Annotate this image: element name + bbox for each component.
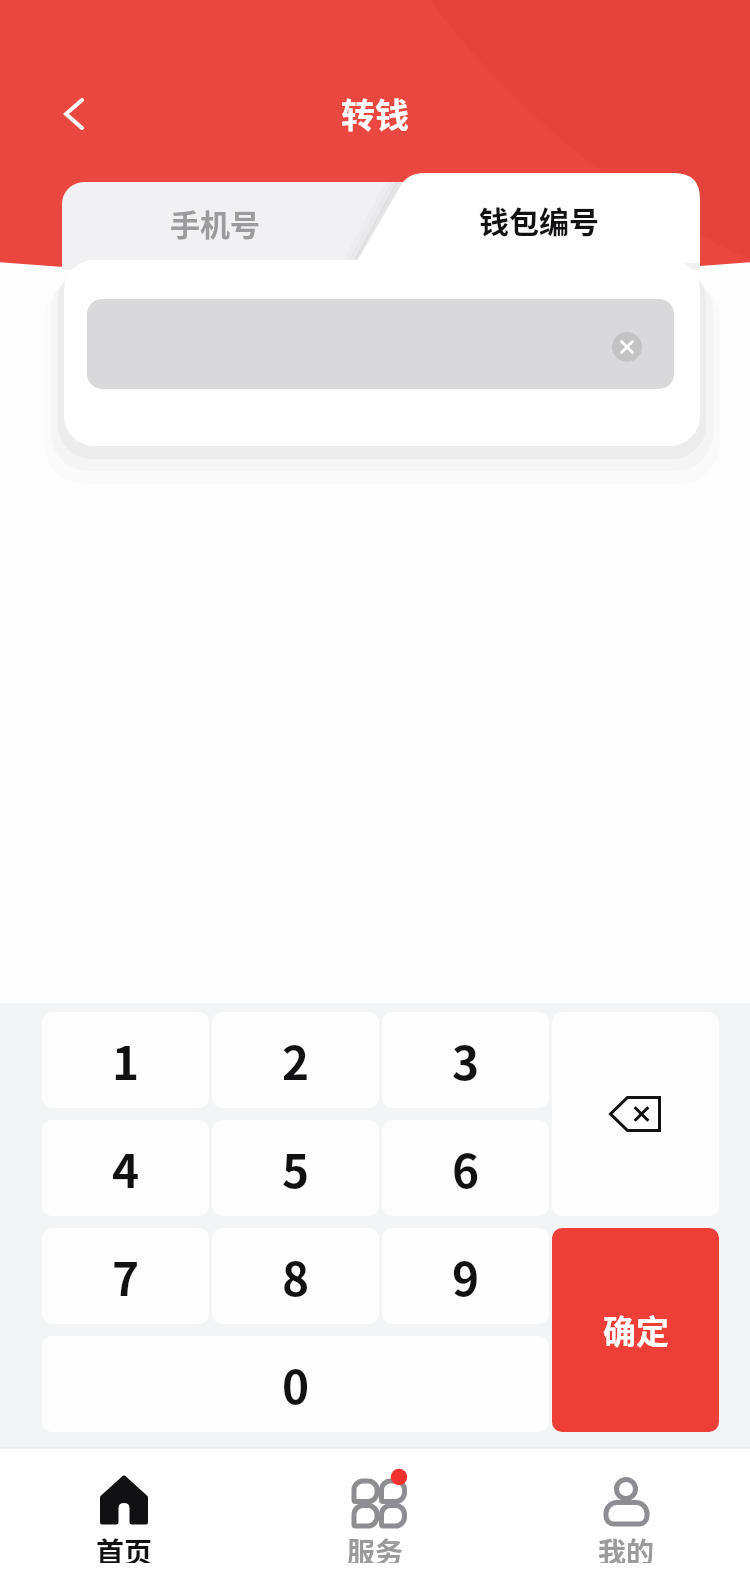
button[interactable] xyxy=(300,1454,450,1582)
button[interactable] xyxy=(50,86,102,138)
staticText: 转钱 xyxy=(341,89,409,138)
staticText: 7 xyxy=(112,1243,140,1310)
button[interactable]: 9 xyxy=(382,1228,549,1324)
button[interactable]: 4 xyxy=(42,1120,209,1216)
button[interactable] xyxy=(350,173,700,263)
staticText: 服务 xyxy=(347,1531,404,1563)
staticText: 4 xyxy=(112,1135,140,1202)
button[interactable]: 确定 xyxy=(552,1228,719,1432)
staticText: 1 xyxy=(112,1027,140,1094)
staticText: 0 xyxy=(282,1351,310,1418)
button[interactable]: 6 xyxy=(382,1120,549,1216)
button[interactable] xyxy=(49,1454,199,1582)
staticText: 3 xyxy=(452,1027,480,1094)
staticText: 5 xyxy=(282,1135,310,1202)
button[interactable]: 3 xyxy=(382,1012,549,1108)
button[interactable]: 8 xyxy=(212,1228,379,1324)
staticText: 2 xyxy=(282,1027,310,1094)
button[interactable]: 2 xyxy=(212,1012,379,1108)
staticText: 我的 xyxy=(598,1531,655,1563)
staticText: 钱包编号 xyxy=(479,198,599,241)
staticText: 首页 xyxy=(96,1531,153,1563)
button[interactable] xyxy=(612,332,642,362)
staticText: 8 xyxy=(282,1243,310,1310)
button[interactable]: 1 xyxy=(42,1012,209,1108)
staticText: 9 xyxy=(452,1243,480,1310)
staticText: 6 xyxy=(452,1135,480,1202)
button[interactable]: 7 xyxy=(42,1228,209,1324)
button[interactable] xyxy=(552,1012,719,1216)
button[interactable] xyxy=(551,1454,701,1582)
button[interactable]: 5 xyxy=(212,1120,379,1216)
button[interactable] xyxy=(87,299,674,389)
staticText: 手机号 xyxy=(170,201,260,244)
button[interactable]: 手机号 xyxy=(65,182,365,262)
button[interactable]: 0 xyxy=(42,1336,549,1432)
staticText: 确定 xyxy=(603,1306,669,1354)
